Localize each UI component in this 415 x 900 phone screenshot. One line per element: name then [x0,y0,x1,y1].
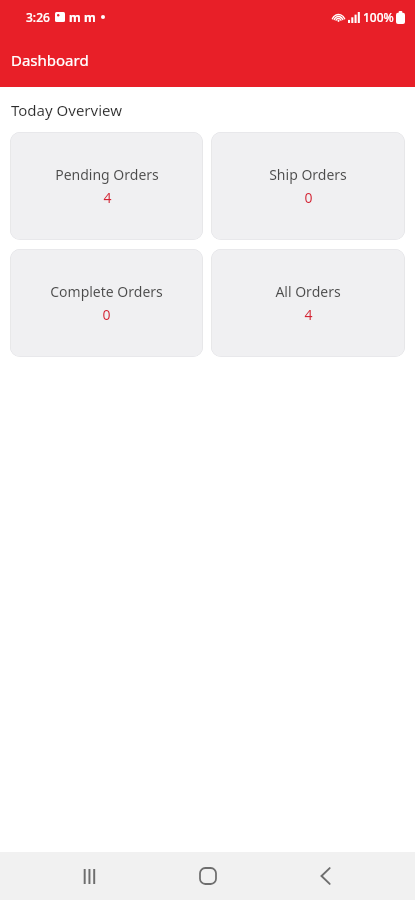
button[interactable]: Pending Orders [10,132,203,240]
button[interactable]: Back [297,852,353,900]
button[interactable]: Recent apps [62,852,118,900]
staticText: 3:26 [26,9,50,25]
button[interactable]: Home [180,852,236,900]
staticText: m [84,9,96,25]
staticText: Complete Orders [50,282,163,301]
staticText: All Orders [275,282,341,301]
button[interactable]: All Orders [211,249,405,357]
button[interactable]: Complete Orders [10,249,203,357]
staticText: 0 [102,305,111,324]
staticText: Ship Orders [269,165,347,184]
staticText: 0 [304,188,313,207]
staticText: Dashboard [11,50,89,70]
staticText: Today Overview [11,100,122,120]
staticText: 4 [103,188,112,207]
staticText: 100% [363,9,394,25]
button[interactable]: Ship Orders [211,132,405,240]
staticText: m [69,9,81,25]
staticText: 4 [304,305,313,324]
staticText: Pending Orders [55,165,159,184]
